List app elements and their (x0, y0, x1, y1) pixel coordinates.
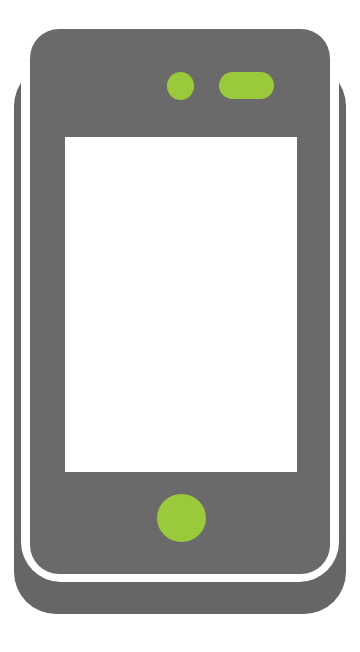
button[interactable]: Smartphone illustration (0, 0, 360, 652)
